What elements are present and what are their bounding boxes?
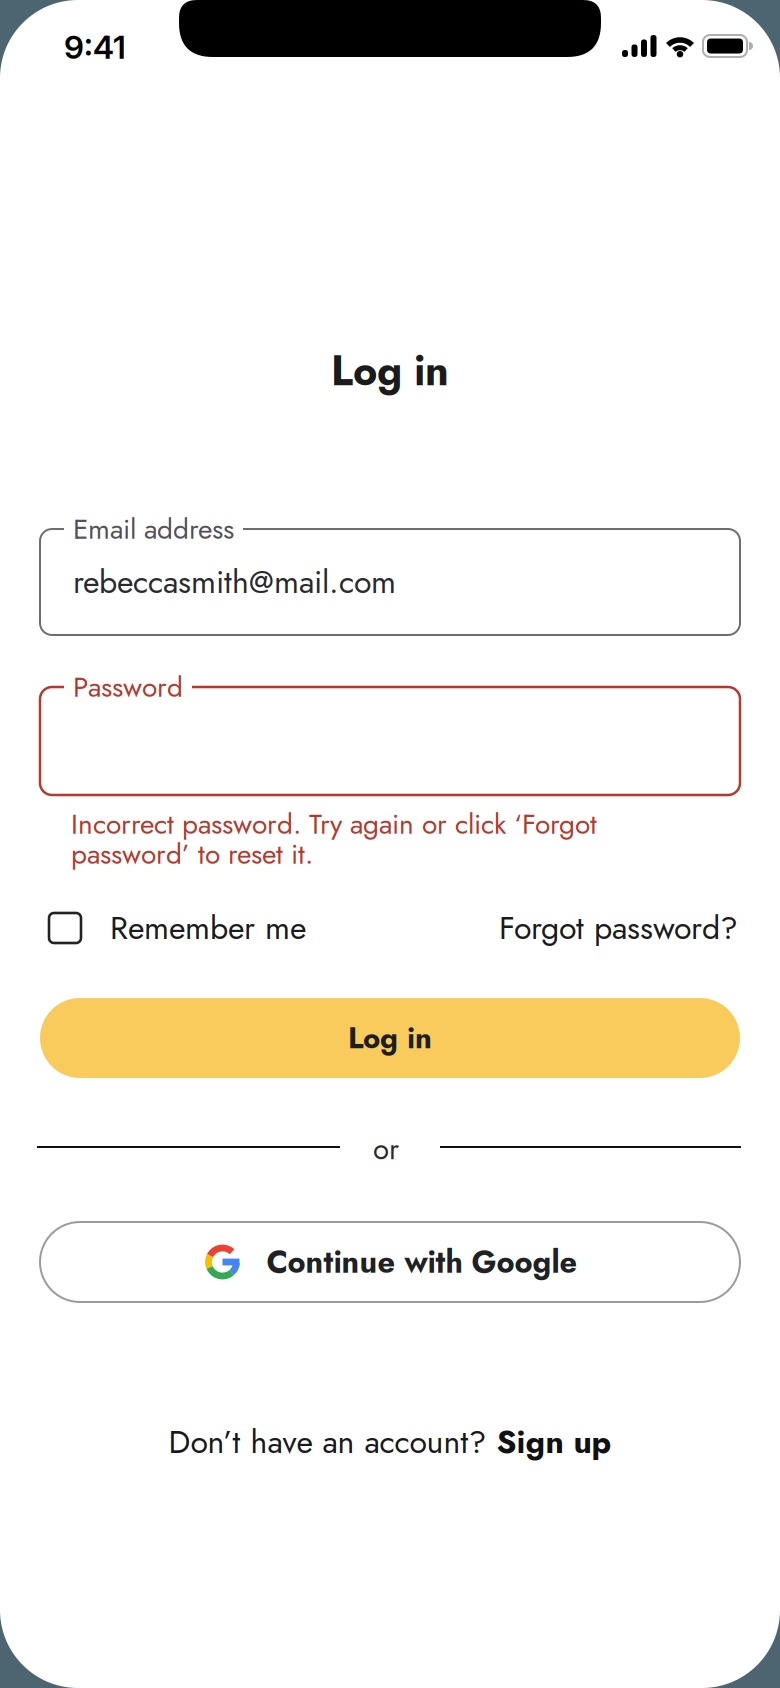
staticText: Password [73,667,183,707]
staticText: Remember me [110,905,306,951]
staticText: Forgot password? [499,905,738,951]
button[interactable]: Log in [40,998,740,1078]
button[interactable]: Remember me [49,905,306,951]
staticText: Log in [348,1017,432,1059]
staticText: Continue with Google [266,1240,577,1284]
staticText: Sign up [496,1419,611,1465]
staticText: Log in [331,342,449,400]
staticText: Don’t have an account? [168,1419,486,1465]
button[interactable]: Sign up [496,1419,611,1465]
button[interactable]: Continue with Google [40,1222,740,1302]
staticText: password’ to reset it. [71,834,313,874]
staticText: 9:41 [64,28,126,66]
staticText: Incorrect password. Try again or click ‘… [71,804,597,844]
button[interactable]: Forgot password? [499,905,738,951]
staticText: or [373,1128,399,1170]
staticText: Email address [73,509,234,549]
staticText: rebeccasmith@mail.com [73,559,396,605]
